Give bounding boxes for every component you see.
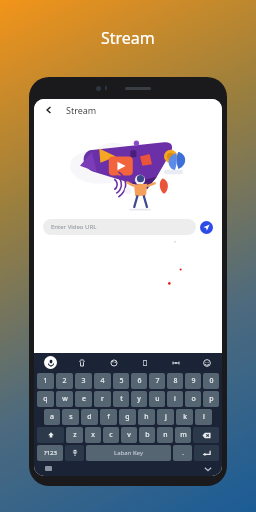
button[interactable]: b [139, 427, 155, 443]
staticText: 8 [173, 376, 178, 386]
button[interactable]: z [66, 427, 83, 443]
staticText: m [180, 430, 187, 440]
button[interactable]: 2 [56, 373, 73, 389]
staticText: j [165, 412, 167, 422]
button[interactable]: Emoji [191, 353, 222, 372]
staticText: h [144, 412, 149, 422]
staticText: g [125, 412, 130, 422]
staticText: 9 [191, 376, 196, 386]
button[interactable]: Keyboard [42, 463, 54, 475]
button[interactable]: Back [40, 101, 58, 119]
staticText: 0 [209, 376, 214, 386]
button[interactable]: k [176, 409, 193, 425]
staticText: ?123 [44, 449, 57, 457]
staticText: Stream [101, 27, 155, 49]
button[interactable]: . [173, 445, 192, 461]
staticText: d [87, 412, 92, 422]
staticText: w [62, 394, 68, 404]
button[interactable]: j [157, 409, 174, 425]
button[interactable]: 9 [185, 373, 201, 389]
button[interactable]: Send [200, 221, 213, 234]
button[interactable]: 0 [203, 373, 219, 389]
staticText: l [203, 412, 205, 422]
staticText: c [109, 430, 113, 440]
button[interactable]: w [56, 391, 73, 407]
staticText: e [82, 394, 86, 404]
staticText: o [191, 394, 196, 404]
button[interactable]: c [103, 427, 119, 443]
button[interactable]: s [62, 409, 79, 425]
button[interactable]: e [75, 391, 92, 407]
staticText: u [155, 394, 160, 404]
staticText: n [163, 430, 168, 440]
staticText: i [174, 394, 176, 404]
staticText: y [137, 394, 141, 404]
button[interactable]: y [131, 391, 147, 407]
button[interactable]: Clipboard [129, 353, 160, 372]
staticText: v [127, 430, 131, 440]
staticText: s [69, 412, 73, 422]
button[interactable]: Backspace [193, 427, 219, 443]
staticText: Laban Key [114, 449, 143, 457]
button[interactable]: Enter [194, 445, 219, 461]
button[interactable]: r [94, 391, 111, 407]
button[interactable]: 7 [149, 373, 165, 389]
button[interactable]: l [195, 409, 212, 425]
button[interactable]: 5 [113, 373, 129, 389]
staticText: . [182, 449, 184, 457]
staticText: Enter Video URL [51, 223, 97, 231]
staticText: a [50, 412, 54, 422]
button[interactable]: Emoji and language [65, 445, 84, 461]
staticText: f [107, 412, 110, 422]
staticText: r [101, 394, 104, 404]
button[interactable]: Settings [160, 353, 191, 372]
button[interactable]: n [157, 427, 173, 443]
button[interactable]: t [113, 391, 129, 407]
staticText: t [120, 394, 123, 404]
button[interactable]: d [81, 409, 98, 425]
button[interactable]: Voice input [34, 353, 66, 372]
staticText: z [73, 430, 77, 440]
button[interactable]: Enter Video URL [43, 219, 196, 235]
button[interactable]: ?123 [37, 445, 63, 461]
button[interactable]: Shift [37, 427, 64, 443]
button[interactable]: m [175, 427, 191, 443]
button[interactable]: g [119, 409, 136, 425]
button[interactable]: h [138, 409, 155, 425]
button[interactable]: u [149, 391, 165, 407]
staticText: 2 [62, 376, 67, 386]
button[interactable]: x [85, 427, 101, 443]
staticText: b [145, 430, 150, 440]
staticText: Stream [66, 104, 97, 116]
staticText: 4 [100, 376, 105, 386]
button[interactable]: Laban Key [86, 445, 171, 461]
button[interactable]: Hide keyboard [202, 463, 214, 475]
button[interactable]: 4 [94, 373, 111, 389]
button[interactable]: 8 [167, 373, 183, 389]
button[interactable]: o [185, 391, 201, 407]
staticText: p [209, 394, 214, 404]
button[interactable]: f [100, 409, 117, 425]
staticText: k [183, 412, 187, 422]
button[interactable]: q [37, 391, 54, 407]
staticText: x [91, 430, 95, 440]
button[interactable]: p [203, 391, 219, 407]
staticText: 5 [119, 376, 124, 386]
button[interactable]: 1 [37, 373, 54, 389]
button[interactable]: Themes [98, 353, 129, 372]
button[interactable]: Stickers [66, 353, 98, 372]
button[interactable]: v [121, 427, 137, 443]
button[interactable]: 3 [75, 373, 92, 389]
staticText: 3 [81, 376, 86, 386]
staticText: 6 [137, 376, 142, 386]
staticText: q [43, 394, 48, 404]
staticText: 1 [43, 376, 48, 386]
button[interactable]: 6 [131, 373, 147, 389]
staticText: 7 [155, 376, 160, 386]
button[interactable]: a [44, 409, 60, 425]
button[interactable]: i [167, 391, 183, 407]
